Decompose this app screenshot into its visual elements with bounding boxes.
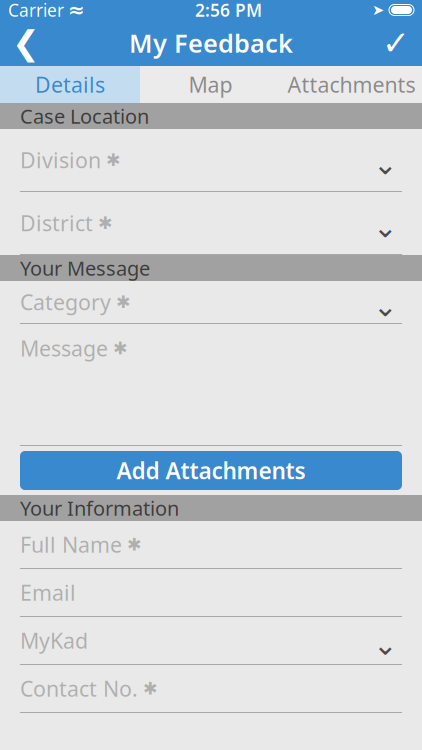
button[interactable]: Save <box>370 20 422 66</box>
staticText: ≈ <box>68 0 85 21</box>
staticText: Message <box>20 334 108 362</box>
staticText: 2:56 PM <box>195 0 262 21</box>
button[interactable]: Attachments <box>281 66 422 103</box>
button[interactable]: Full Name <box>0 521 422 569</box>
staticText: ✓ <box>382 24 410 62</box>
staticText: Your Message <box>20 255 150 281</box>
button[interactable]: Add Attachments <box>20 451 402 490</box>
staticText: Case Location <box>20 103 149 129</box>
staticText: Full Name <box>20 530 122 559</box>
button[interactable]: Map <box>140 66 281 103</box>
button[interactable]: Division <box>0 129 422 192</box>
staticText: ✱ <box>113 338 128 358</box>
button[interactable]: Contact No. <box>0 665 422 713</box>
staticText: District <box>20 209 93 237</box>
staticText: Your Information <box>20 495 179 521</box>
staticText: Carrier <box>8 0 64 21</box>
button[interactable]: District <box>0 192 422 255</box>
button[interactable]: Back <box>0 20 52 66</box>
staticText: ✱ <box>116 292 131 312</box>
staticText: ✱ <box>106 150 121 170</box>
staticText: Division <box>20 146 101 174</box>
staticText: ✱ <box>98 213 113 233</box>
staticText: ✱ <box>143 679 158 698</box>
staticText: ⌄ <box>373 210 398 244</box>
button[interactable]: Email <box>0 569 422 617</box>
button[interactable]: Details <box>0 66 140 103</box>
staticText: ➤ <box>372 2 384 18</box>
staticText: Details <box>35 70 105 99</box>
staticText: MyKad <box>20 626 88 655</box>
staticText: Contact No. <box>20 674 138 703</box>
button[interactable]: MyKad <box>0 617 422 665</box>
button[interactable]: Category <box>0 281 422 324</box>
staticText: ✱ <box>127 535 142 554</box>
staticText: Add Attachments <box>116 455 305 485</box>
staticText: Map <box>188 70 232 99</box>
button[interactable]: Message <box>0 324 422 446</box>
staticText: ⌄ <box>373 628 398 661</box>
staticText: ❮ <box>12 24 40 62</box>
staticText: ⌄ <box>373 147 398 181</box>
staticText: Email <box>20 578 76 607</box>
staticText: Category <box>20 288 111 316</box>
staticText: Attachments <box>287 70 415 99</box>
staticText: My Feedback <box>129 26 293 60</box>
staticText: ⌄ <box>373 289 398 323</box>
